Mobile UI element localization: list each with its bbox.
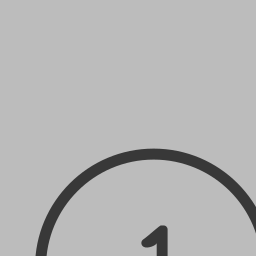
button[interactable]: Timer, 1 — [0, 0, 256, 256]
